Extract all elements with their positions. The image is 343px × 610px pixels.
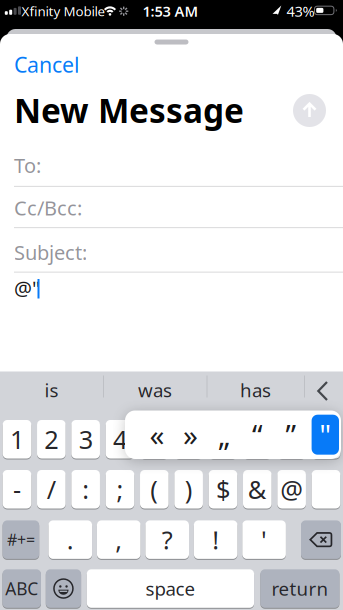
button[interactable]: ? [145, 520, 189, 560]
button[interactable]: Send [293, 94, 326, 127]
staticText: $ [216, 472, 230, 506]
button[interactable]: Quote [312, 470, 340, 509]
button[interactable]: & [243, 470, 272, 509]
staticText: 43% [286, 1, 314, 21]
button[interactable]: : [71, 470, 100, 509]
staticText: #+= [7, 529, 35, 550]
button[interactable]: ” [276, 412, 306, 456]
staticText: , [115, 523, 122, 556]
button[interactable]: , [97, 520, 141, 560]
staticText: Cc/Bcc: [14, 194, 82, 221]
button[interactable]: ) [174, 470, 203, 509]
staticText: » [183, 415, 198, 454]
button[interactable]: 2 [37, 420, 66, 459]
staticText: Subject: [14, 239, 87, 265]
staticText: ) [185, 472, 193, 506]
button[interactable]: @ [277, 470, 306, 509]
staticText: 0 [319, 422, 333, 456]
button[interactable]: space [87, 569, 254, 609]
button[interactable]: Delete [301, 520, 341, 560]
staticText: To: [14, 152, 41, 179]
staticText: : [82, 472, 89, 506]
staticText: return [271, 576, 328, 601]
staticText: is [44, 378, 58, 402]
staticText: ( [150, 472, 158, 506]
staticText: 3 [79, 422, 93, 456]
staticText: @" [14, 275, 40, 301]
button[interactable]: „ [209, 412, 239, 456]
button[interactable]: 1 [3, 420, 31, 459]
button[interactable]: ! [194, 520, 237, 560]
button[interactable]: 8 [243, 420, 272, 459]
staticText: 9 [285, 422, 299, 456]
staticText: “ [252, 415, 263, 454]
button[interactable]: “ [242, 412, 272, 456]
staticText: 8 [250, 422, 264, 456]
button[interactable]: 4 [106, 420, 134, 459]
button[interactable]: Cancel [14, 53, 104, 75]
staticText: has [240, 378, 271, 402]
staticText: 1:53 AM [142, 1, 198, 21]
staticText: 6 [182, 422, 196, 456]
staticText: Cancel [14, 50, 80, 79]
staticText: 2 [44, 422, 58, 456]
staticText: 7 [216, 422, 230, 456]
button[interactable]: - [3, 470, 31, 509]
button[interactable]: Emoji [46, 569, 81, 609]
button[interactable]: Hide predictions [317, 382, 328, 400]
button[interactable]: $ [209, 470, 237, 509]
staticText: ABC [5, 577, 38, 600]
button[interactable]: #+= [3, 520, 39, 560]
button[interactable]: ( [140, 470, 169, 509]
staticText: " [319, 415, 331, 454]
staticText: 1 [10, 422, 24, 456]
staticText: ” [285, 415, 296, 454]
button[interactable]: Straight quote [312, 415, 339, 455]
staticText: . [67, 523, 74, 556]
staticText: ; [116, 472, 123, 506]
staticText: was [138, 378, 172, 402]
button[interactable]: 7 [209, 420, 237, 459]
button[interactable]: was [103, 371, 206, 408]
staticText: 4 [113, 422, 127, 456]
staticText: « [149, 415, 164, 454]
staticText: - [13, 472, 21, 506]
staticText: „ [218, 415, 230, 454]
staticText: 5 [147, 422, 161, 456]
button[interactable]: To: [14, 148, 343, 182]
button[interactable]: « [142, 412, 172, 456]
staticText: ! [212, 523, 219, 556]
button[interactable]: return [260, 569, 339, 609]
staticText: ' [261, 523, 267, 556]
button[interactable]: / [37, 470, 66, 509]
button[interactable]: ' [242, 520, 286, 560]
button[interactable]: 9 [277, 420, 306, 459]
staticText: @ [280, 472, 303, 506]
button[interactable]: » [175, 412, 205, 456]
staticText: Xfinity Mobile [21, 2, 105, 20]
button[interactable]: Cc/Bcc: [14, 191, 343, 225]
staticText: / [47, 472, 56, 506]
button[interactable]: ABC [2, 569, 41, 609]
button[interactable]: is [0, 371, 103, 408]
button[interactable]: 5 [140, 420, 169, 459]
button[interactable]: 6 [174, 420, 203, 459]
staticText: space [145, 576, 195, 601]
button[interactable]: Subject: [14, 235, 343, 269]
button[interactable]: ; [106, 470, 134, 509]
button[interactable]: 0 [312, 420, 340, 459]
button[interactable]: has [207, 371, 304, 408]
staticText: ? [162, 523, 173, 556]
staticText: & [248, 472, 267, 506]
staticText: New Message [14, 88, 244, 132]
button[interactable]: . [48, 520, 92, 560]
button[interactable]: 3 [71, 420, 100, 459]
